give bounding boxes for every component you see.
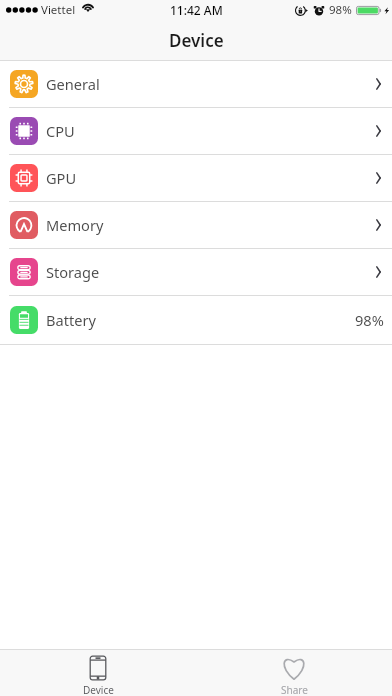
- staticText: Device: [83, 683, 114, 696]
- button[interactable]: CPU: [0, 108, 392, 155]
- staticText: General: [46, 74, 100, 94]
- staticText: Battery: [46, 310, 96, 330]
- staticText: Device: [169, 29, 224, 52]
- staticText: GPU: [46, 168, 77, 188]
- button[interactable]: Device: [0, 649, 196, 696]
- button[interactable]: GPU: [0, 155, 392, 202]
- button[interactable]: Battery: [0, 296, 392, 345]
- button[interactable]: Storage: [0, 249, 392, 296]
- staticText: 98%: [355, 310, 384, 330]
- staticText: 11:42 AM: [170, 2, 223, 18]
- staticText: Share: [281, 683, 308, 696]
- button[interactable]: Share: [196, 649, 392, 696]
- staticText: Memory: [46, 215, 104, 235]
- staticText: 98%: [329, 2, 352, 18]
- staticText: CPU: [46, 121, 75, 141]
- staticText: Storage: [46, 262, 100, 282]
- button[interactable]: General: [0, 61, 392, 108]
- staticText: Viettel: [41, 2, 76, 18]
- button[interactable]: Memory: [0, 202, 392, 249]
